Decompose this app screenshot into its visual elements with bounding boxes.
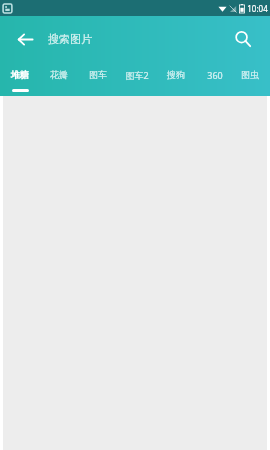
staticText: 360 [207,69,223,81]
button[interactable]: Search [226,22,260,56]
staticText: 图车2 [125,69,149,81]
button[interactable]: 搜狗 [156,62,195,96]
button[interactable]: 图车2 [117,62,156,96]
staticText: 10:04 [247,3,268,14]
staticText: 堆糖 [11,69,29,80]
button[interactable]: 图虫 [234,62,266,96]
button[interactable]: 图车 [78,62,117,96]
staticText: 搜索图片 [48,32,92,46]
staticText: 图车 [89,69,107,80]
staticText: 搜狗 [167,69,185,80]
button[interactable]: Back [8,22,42,56]
button[interactable]: 360 [195,62,234,96]
staticText: 图虫 [241,69,259,80]
button[interactable]: 花瓣 [39,62,78,96]
staticText: 花瓣 [50,69,68,80]
button[interactable]: 堆糖 [0,62,39,96]
